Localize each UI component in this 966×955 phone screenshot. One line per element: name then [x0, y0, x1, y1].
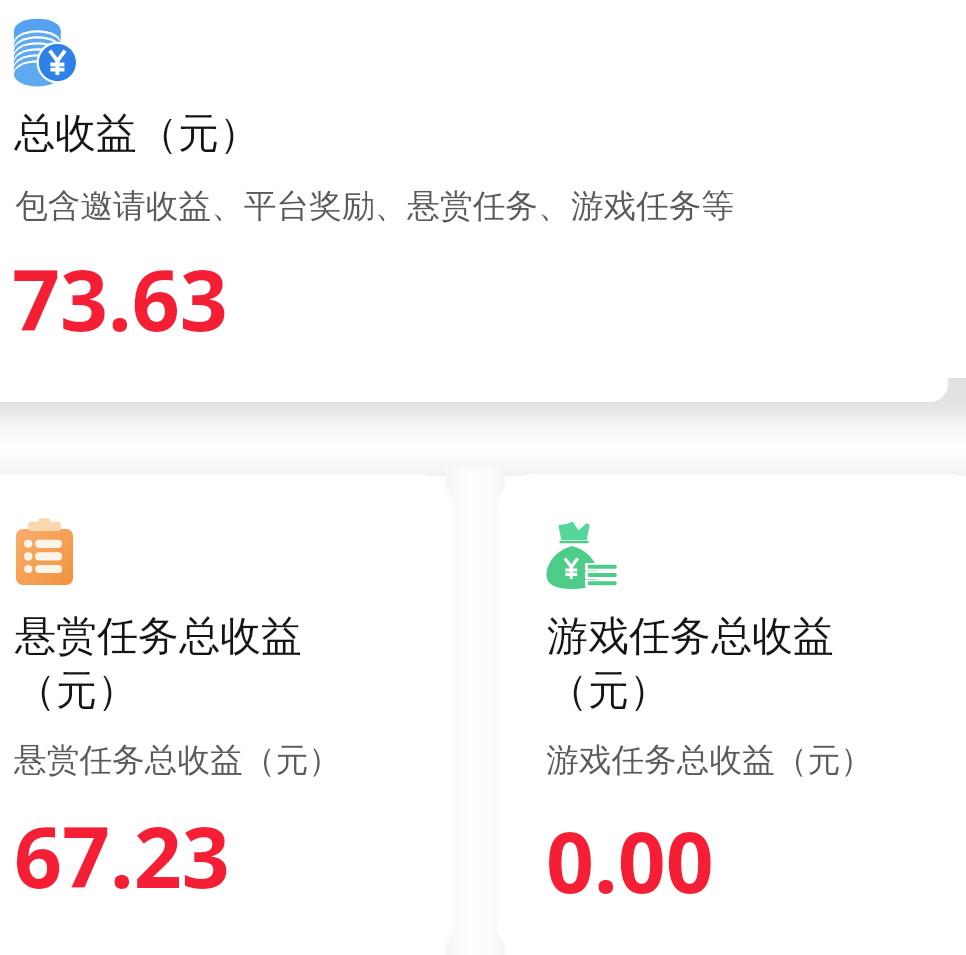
staticText: 总收益（元）	[14, 108, 260, 160]
staticText: 73.63	[12, 241, 228, 355]
staticText: 0.00	[546, 803, 714, 917]
button[interactable]: 悬赏任务	[0, 474, 453, 955]
other: 悬赏任务	[16, 517, 73, 585]
staticText: 游戏任务总收益 （元）	[547, 611, 834, 716]
button[interactable]: 游戏任务	[497, 474, 966, 955]
staticText: 包含邀请收益、平台奖励、悬赏任务、游戏任务等	[15, 186, 735, 227]
staticText: 悬赏任务总收益（元）	[14, 740, 341, 781]
staticText: 游戏任务总收益（元）	[546, 740, 873, 781]
staticText: 悬赏任务总收益 （元）	[15, 611, 302, 716]
button[interactable]: 总收益	[0, 0, 948, 402]
other: 游戏任务	[545, 519, 617, 589]
other: 总收益	[14, 18, 76, 83]
staticText: 67.23	[14, 798, 230, 912]
